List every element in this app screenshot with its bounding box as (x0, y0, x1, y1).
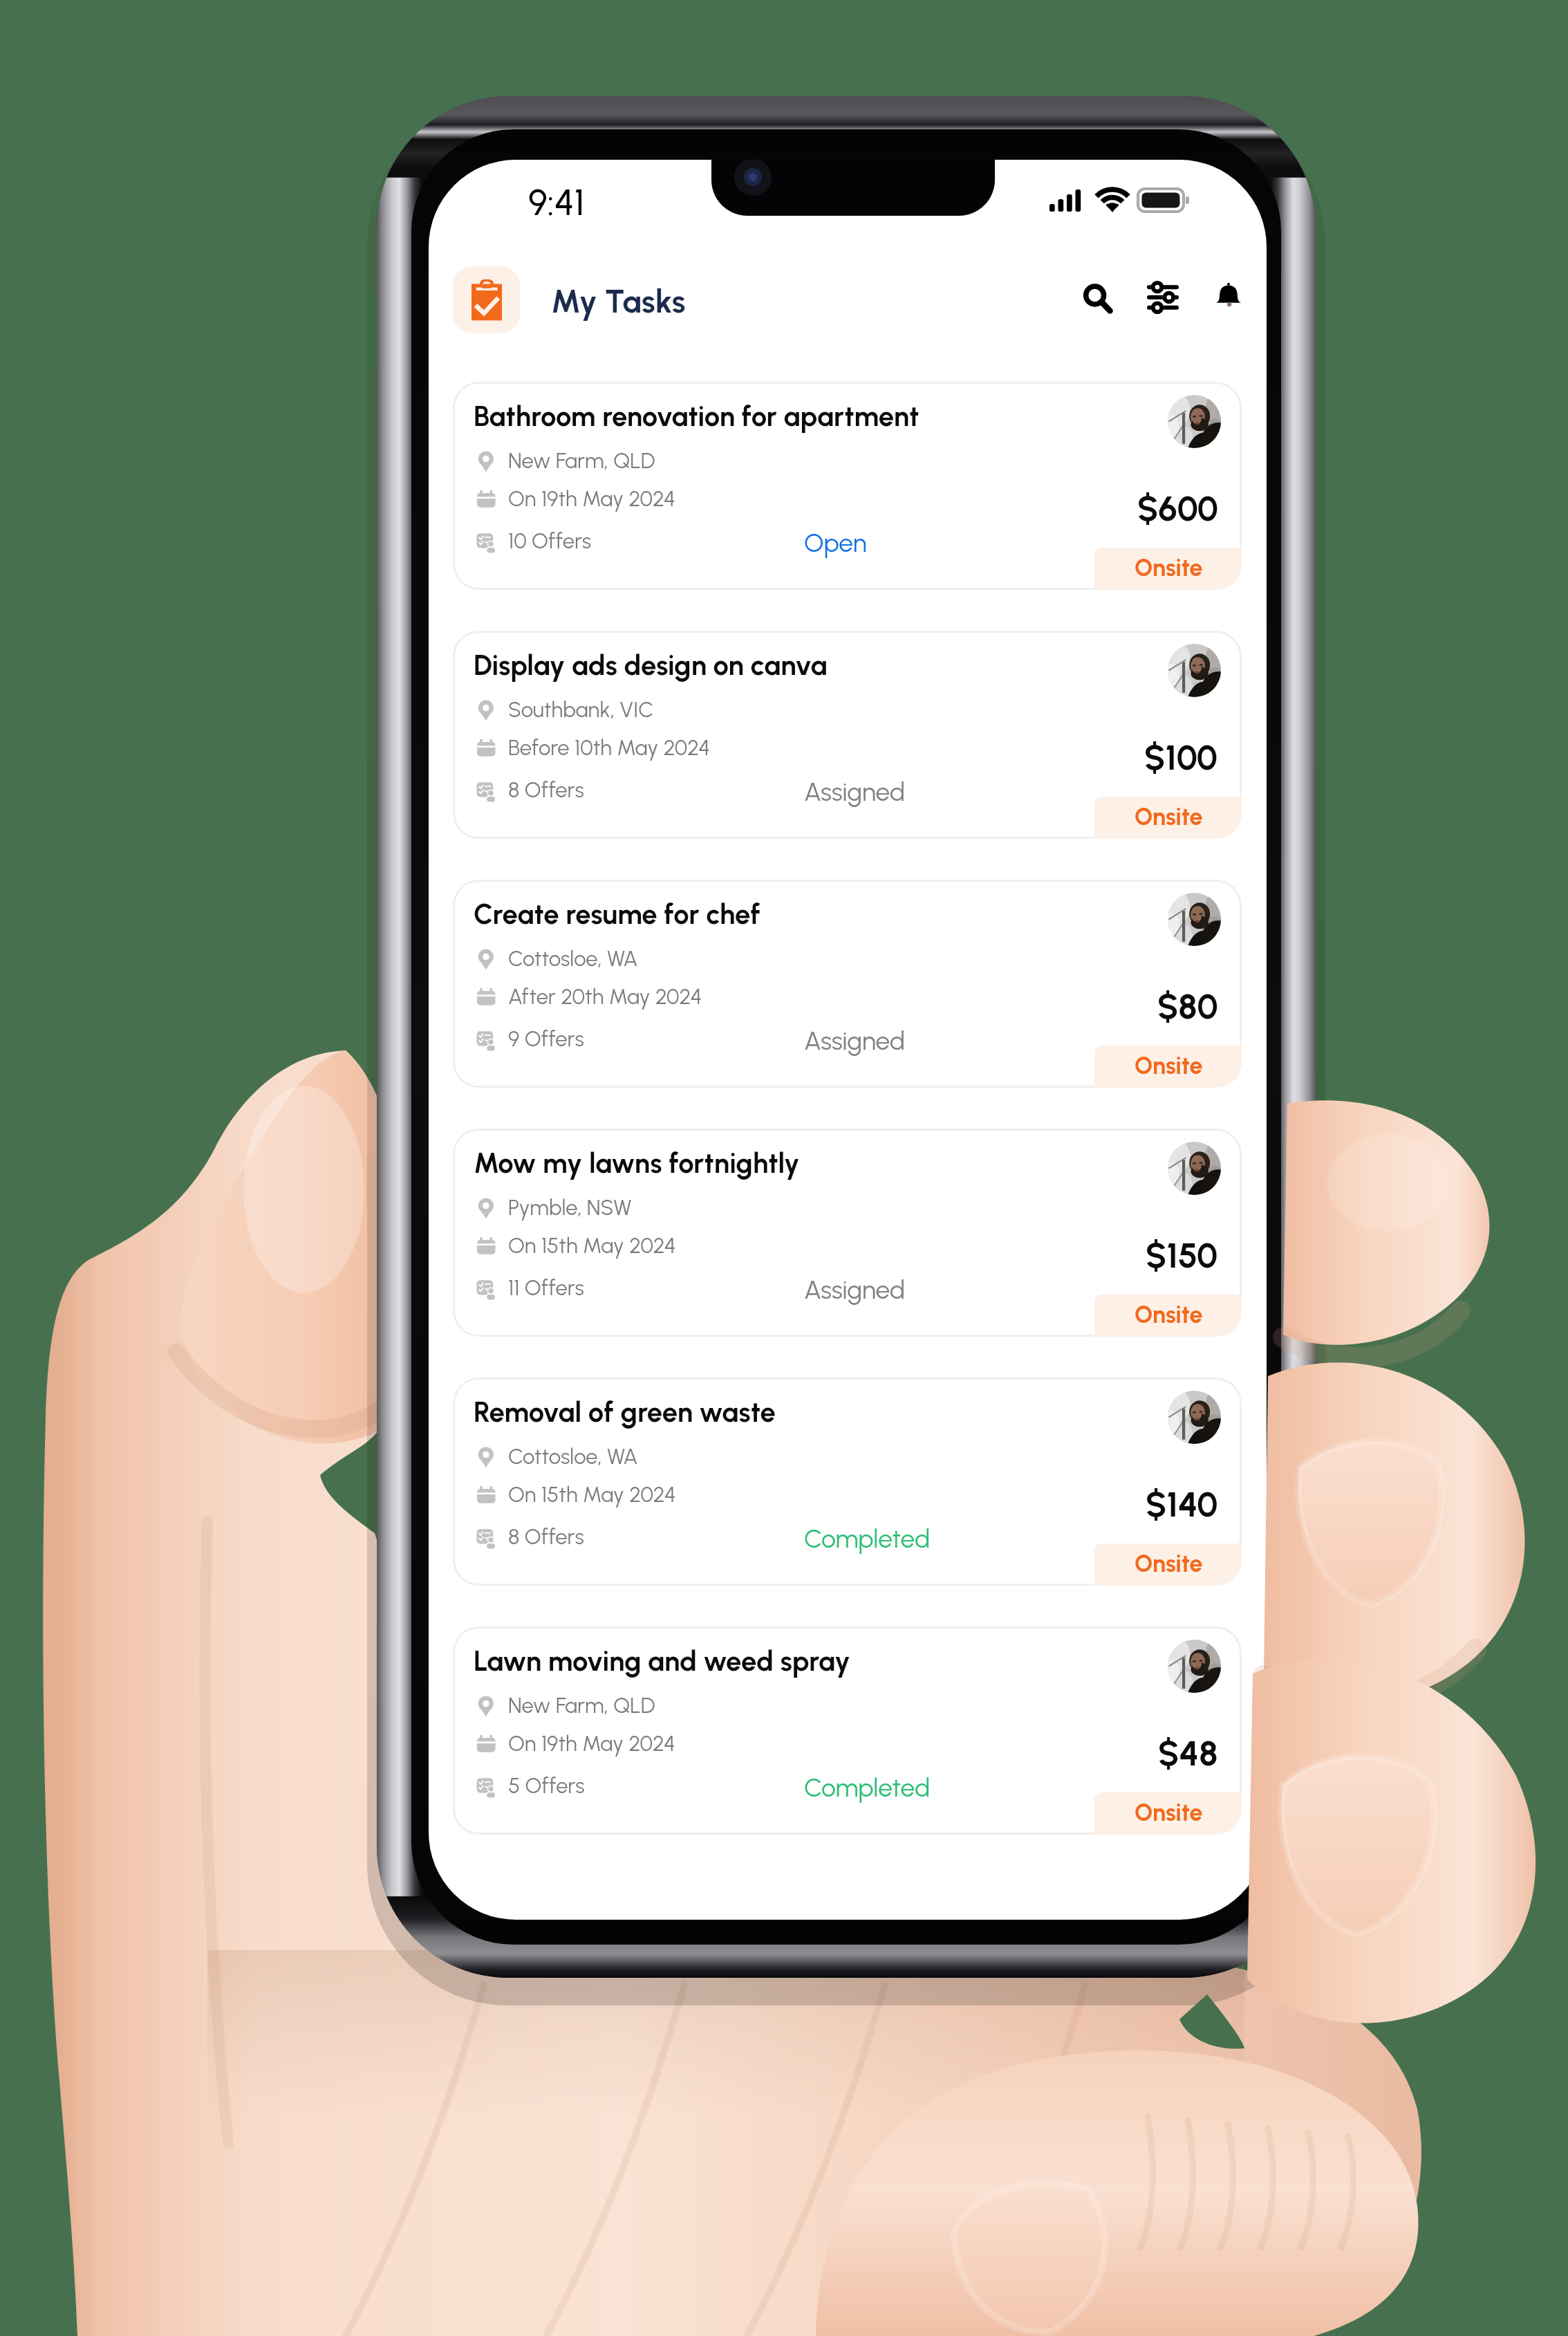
button[interactable]: Onsite (1094, 548, 1242, 590)
staticText: Completed (804, 1523, 931, 1554)
staticText: Lawn moving and weed spray (474, 1644, 850, 1678)
staticText: Southbank, VIC (508, 697, 654, 723)
staticText: $600 (1137, 488, 1218, 529)
button[interactable]: Lawn moving and weed spray (453, 1626, 1242, 1835)
button[interactable]: Onsite (1094, 1295, 1242, 1337)
staticText: New Farm, QLD (508, 448, 655, 474)
button[interactable]: Onsite (1094, 797, 1242, 839)
staticText: On 15th May 2024 (508, 1233, 676, 1259)
staticText: Mow my lawns fortnightly (474, 1147, 800, 1180)
staticText: On 19th May 2024 (508, 486, 675, 512)
staticText: Completed (804, 1772, 931, 1803)
button[interactable]: Display ads design on canva (453, 631, 1242, 839)
button[interactable]: Filter (1125, 259, 1201, 335)
staticText: $140 (1146, 1483, 1218, 1525)
staticText: $48 (1158, 1732, 1218, 1774)
staticText: New Farm, QLD (508, 1693, 655, 1718)
staticText: On 19th May 2024 (508, 1731, 675, 1756)
button[interactable]: Onsite (1094, 1544, 1242, 1586)
staticText: Bathroom renovation for apartment (474, 400, 920, 433)
button[interactable]: Mow my lawns fortnightly (453, 1129, 1242, 1337)
staticText: After 20th May 2024 (508, 984, 702, 1010)
staticText: $80 (1157, 985, 1218, 1027)
staticText: Cottosloe, WA (508, 946, 638, 972)
staticText: Onsite (1135, 1799, 1203, 1827)
button[interactable]: Removal of green waste (453, 1378, 1242, 1586)
staticText: Assigned (804, 777, 906, 807)
staticText: On 15th May 2024 (508, 1482, 676, 1508)
staticText: $150 (1146, 1234, 1218, 1276)
staticText: Onsite (1135, 1052, 1203, 1080)
staticText: Onsite (1135, 554, 1203, 582)
staticText: Before 10th May 2024 (508, 735, 711, 761)
staticText: Onsite (1135, 1550, 1203, 1578)
staticText: Open (804, 528, 867, 558)
button[interactable]: Notifications (1191, 258, 1267, 334)
button[interactable]: Onsite (1094, 1046, 1242, 1088)
staticText: 9:41 (528, 181, 585, 224)
staticText: Onsite (1135, 1301, 1203, 1329)
staticText: Onsite (1135, 803, 1203, 831)
staticText: $100 (1144, 736, 1218, 778)
button[interactable]: My Tasks (453, 266, 520, 333)
button[interactable]: Bathroom renovation for apartment (453, 382, 1242, 590)
staticText: 11 Offers (508, 1275, 584, 1301)
staticText: Cottosloe, WA (508, 1444, 638, 1470)
button[interactable]: Onsite (1094, 1792, 1242, 1835)
staticText: 10 Offers (508, 528, 592, 554)
staticText: Removal of green waste (474, 1396, 776, 1429)
staticText: Display ads design on canva (474, 649, 828, 682)
button[interactable]: Search (1060, 260, 1136, 336)
staticText: Assigned (804, 1274, 906, 1305)
button[interactable]: Create resume for chef (453, 880, 1242, 1088)
staticText: 8 Offers (508, 777, 584, 803)
staticText: 9 Offers (508, 1026, 584, 1052)
staticText: 8 Offers (508, 1524, 584, 1550)
staticText: My Tasks (551, 282, 686, 320)
staticText: 5 Offers (508, 1773, 585, 1799)
staticText: Create resume for chef (474, 898, 760, 931)
staticText: Assigned (804, 1026, 906, 1056)
staticText: Pymble, NSW (508, 1195, 632, 1221)
